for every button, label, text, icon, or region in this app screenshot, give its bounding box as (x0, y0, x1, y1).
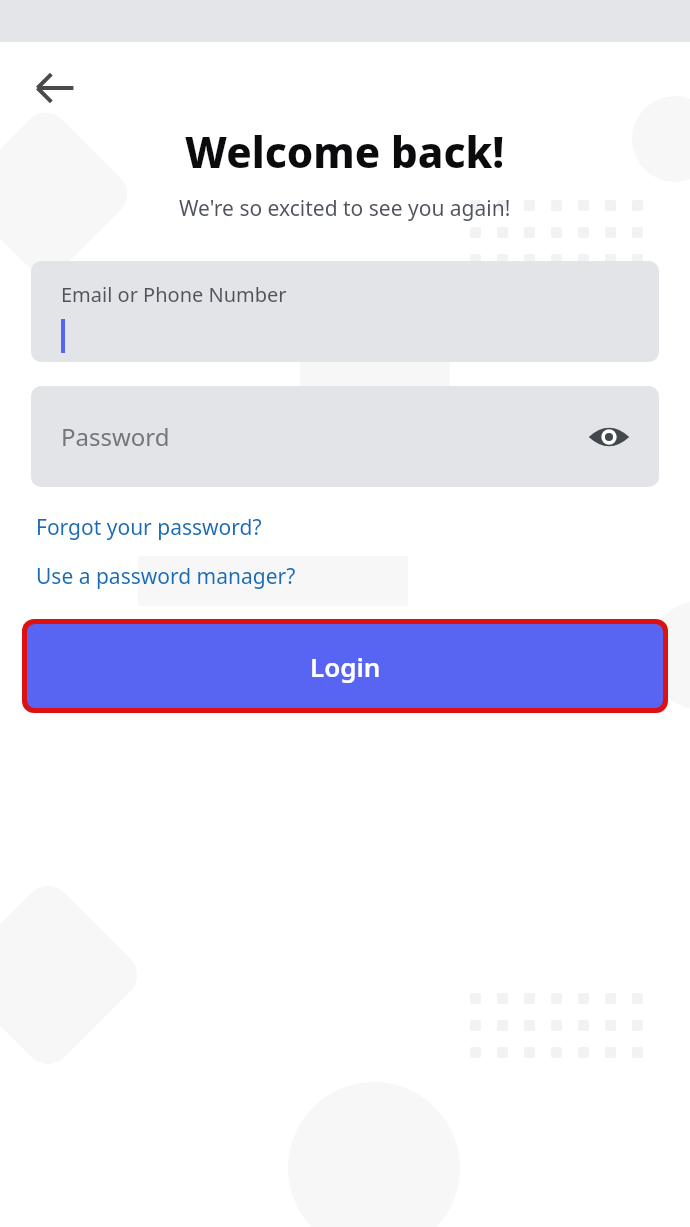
staticText: Login (310, 649, 381, 684)
button[interactable]: Back (26, 59, 84, 117)
staticText: Email or Phone Number (61, 281, 287, 308)
button[interactable]: Password (31, 386, 659, 487)
button[interactable]: Use a password manager? (31, 558, 301, 595)
button[interactable]: Show password (583, 411, 635, 463)
staticText: We're so excited to see you again! (179, 194, 511, 223)
staticText: Use a password manager? (36, 562, 296, 591)
staticText: Welcome back! (185, 123, 505, 180)
button[interactable]: Email or Phone Number (31, 261, 659, 362)
button[interactable]: Login (27, 624, 663, 708)
staticText: Forgot your password? (36, 513, 262, 542)
button[interactable]: Forgot your password? (31, 509, 267, 546)
staticText: Password (61, 420, 170, 453)
